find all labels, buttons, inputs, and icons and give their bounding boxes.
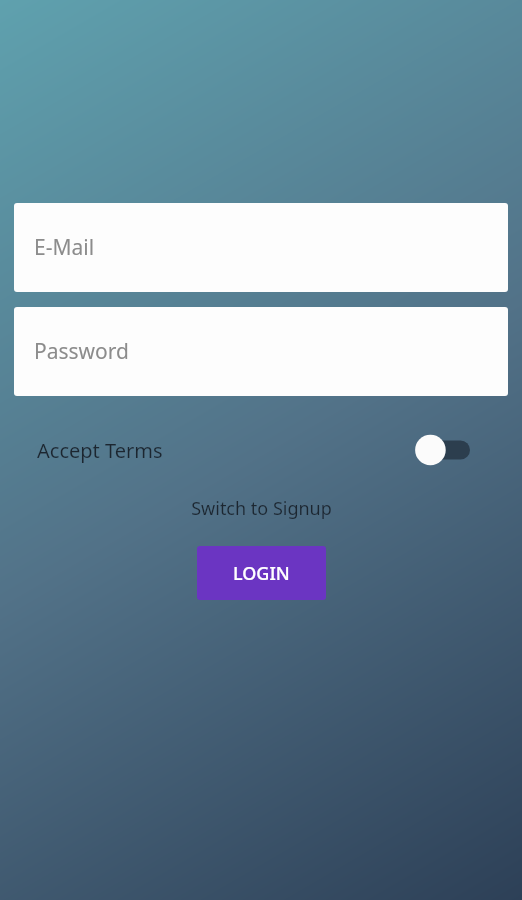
staticText: LOGIN <box>233 561 290 586</box>
button[interactable]: Accept Terms <box>0 424 522 476</box>
button[interactable]: Password <box>14 307 508 396</box>
staticText: Password <box>34 337 129 366</box>
button[interactable]: E-Mail <box>14 203 508 292</box>
button[interactable]: Accept Terms toggle <box>414 433 470 467</box>
staticText: Switch to Signup <box>191 496 332 521</box>
staticText: E-Mail <box>34 233 95 262</box>
button[interactable]: Switch to Signup <box>177 488 346 529</box>
staticText: Accept Terms <box>37 437 163 464</box>
button[interactable]: LOGIN <box>197 546 326 600</box>
